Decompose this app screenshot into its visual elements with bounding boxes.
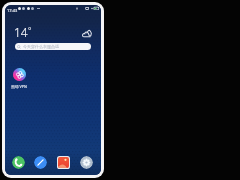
button[interactable]: Phone [12,156,25,169]
staticText: ° [28,24,32,35]
staticText: 熊猫 VPN [11,84,27,89]
staticText: 今天穿什么衣服合适 [23,44,59,49]
button[interactable]: Gallery [57,156,70,169]
button[interactable]: Weather [82,29,92,39]
button[interactable]: 今天穿什么衣服合适 [15,43,91,50]
button[interactable]: 熊猫 VPN [7,68,31,89]
button[interactable]: Settings [80,156,93,169]
button[interactable]: Browser [34,156,47,169]
staticText: 17:43 [7,8,18,13]
staticText: 14 [14,24,28,40]
